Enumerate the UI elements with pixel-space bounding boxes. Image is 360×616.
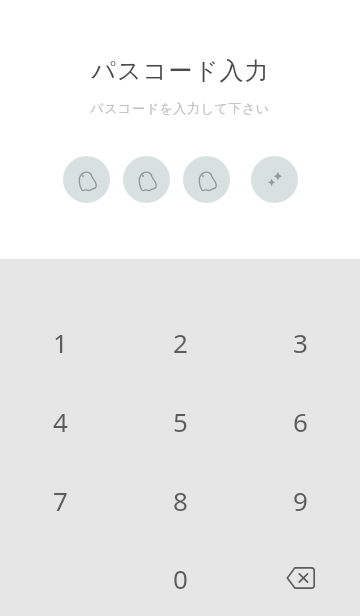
staticText: 9 bbox=[293, 483, 308, 518]
button[interactable]: 5 bbox=[120, 382, 240, 461]
staticText: 8 bbox=[173, 483, 188, 518]
staticText: 6 bbox=[293, 404, 308, 439]
staticText: 4 bbox=[53, 404, 68, 439]
button[interactable]: 4 bbox=[0, 382, 120, 461]
button[interactable]: 6 bbox=[240, 382, 360, 461]
staticText: 0 bbox=[173, 561, 188, 596]
button[interactable]: 0 bbox=[120, 540, 240, 616]
button[interactable]: 2 bbox=[120, 303, 240, 382]
staticText: パスコードを入力して下さい bbox=[90, 100, 270, 116]
staticText: 3 bbox=[293, 325, 308, 360]
button[interactable]: 1 bbox=[0, 303, 120, 382]
staticText: 2 bbox=[173, 325, 188, 360]
button[interactable]: 3 bbox=[240, 303, 360, 382]
button[interactable]: 8 bbox=[120, 461, 240, 540]
button[interactable]: Backspace bbox=[240, 540, 360, 616]
button[interactable]: 7 bbox=[0, 461, 120, 540]
staticText: 7 bbox=[53, 483, 68, 518]
button[interactable]: 9 bbox=[240, 461, 360, 540]
staticText: 1 bbox=[53, 325, 68, 360]
staticText: 5 bbox=[173, 404, 188, 439]
staticText: パスコード入力 bbox=[91, 56, 270, 86]
